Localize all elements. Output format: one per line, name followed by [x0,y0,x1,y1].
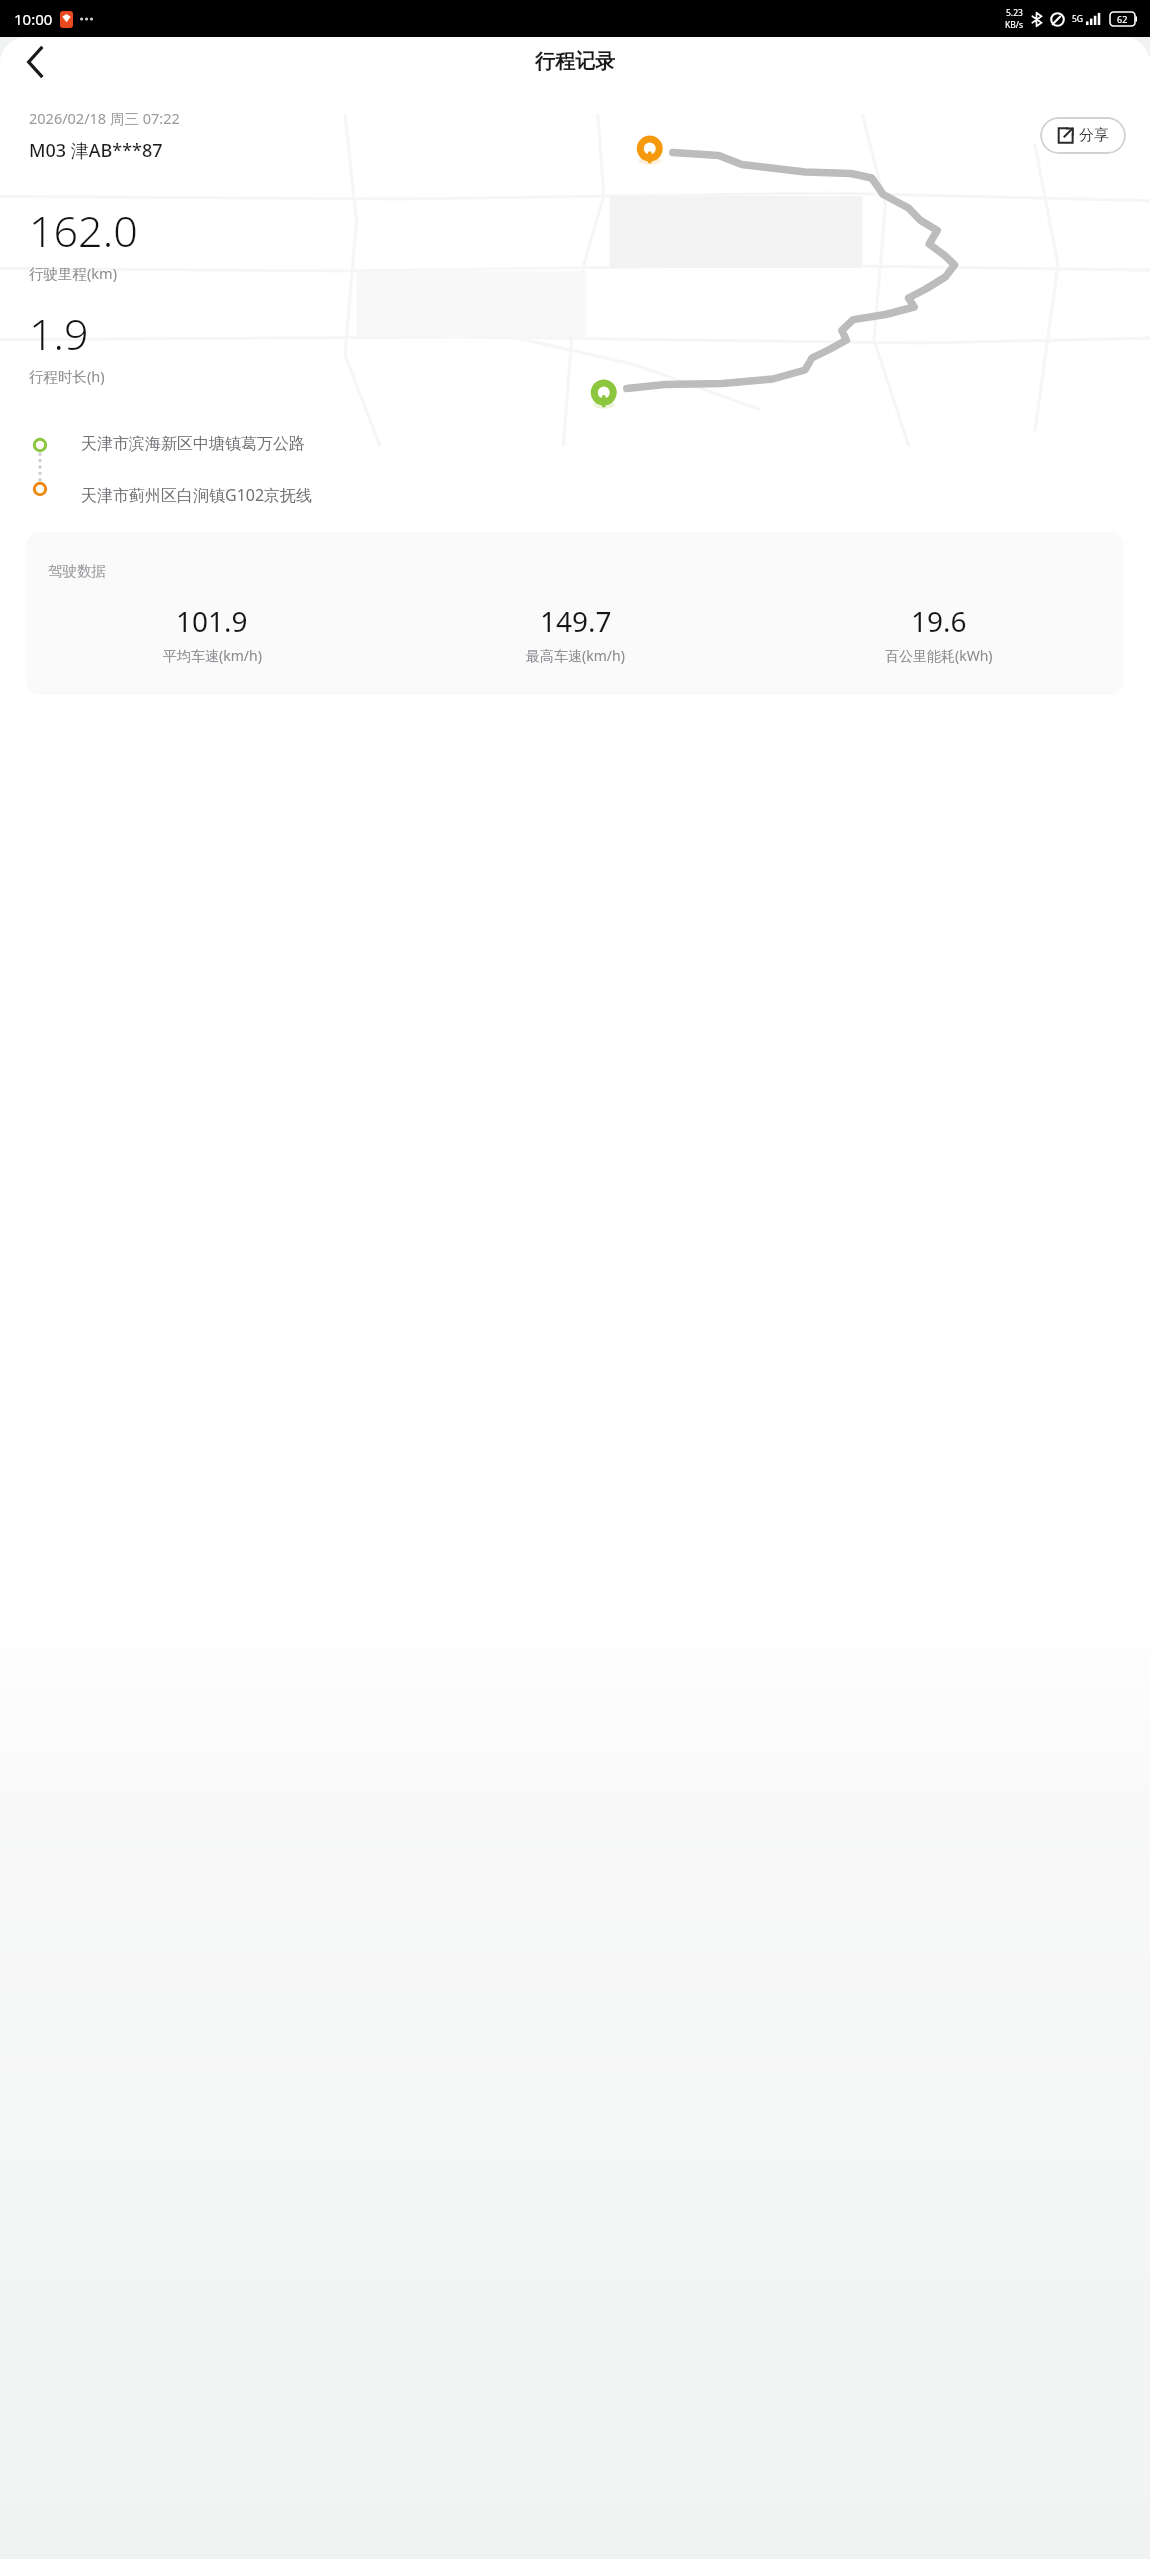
button[interactable]: 天津市蓟州区白涧镇G102京抚线 [81,482,1126,508]
staticText: M03 津AB***87 [29,138,163,163]
staticText: 行程时长(h) [29,366,105,386]
staticText: 最高车速(km/h) [526,646,625,665]
staticText: 百公里能耗(kWh) [885,646,993,665]
staticText: 19.6 [911,602,967,640]
button[interactable]: 分享 [1040,117,1126,154]
staticText: 行驶里程(km) [29,263,118,283]
staticText: KB/s [1005,19,1024,31]
staticText: 驾驶数据 [48,562,106,580]
staticText: 天津市蓟州区白涧镇G102京抚线 [81,484,313,506]
staticText: 62 [1117,13,1128,25]
staticText: 平均车速(km/h) [163,646,262,665]
staticText: 1.9 [29,304,89,363]
staticText: 10:00 [14,9,53,29]
button[interactable]: Back [10,37,60,86]
staticText: 天津市滨海新区中塘镇葛万公路 [81,434,305,454]
staticText: 行程记录 [535,49,615,74]
button[interactable]: 天津市滨海新区中塘镇葛万公路 [81,432,1126,456]
staticText: 162.0 [29,201,138,260]
staticText: 2026/02/18 周三 07:22 [29,108,180,128]
staticText: 5G [1072,13,1084,25]
staticText: 149.7 [540,602,612,640]
staticText: 5.23 [1006,7,1023,19]
button[interactable]: 驾驶数据 [26,532,1124,695]
staticText: 101.9 [176,602,248,640]
staticText: 分享 [1079,126,1109,145]
